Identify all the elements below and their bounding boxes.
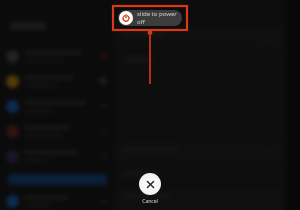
button[interactable]: Power off (118, 10, 182, 26)
button[interactable] (6, 144, 107, 168)
button[interactable] (115, 26, 284, 48)
button[interactable] (6, 44, 107, 68)
button[interactable] (6, 119, 107, 143)
other: Power off (119, 11, 133, 25)
button[interactable] (115, 188, 284, 210)
button[interactable] (6, 94, 107, 118)
button[interactable] (115, 52, 284, 138)
button[interactable] (6, 193, 107, 210)
other: Cancel (139, 173, 161, 195)
button[interactable] (8, 174, 107, 185)
button[interactable] (115, 166, 284, 184)
button[interactable]: Cancel (138, 173, 162, 205)
staticText: Cancel (138, 198, 162, 205)
staticText: slide to power off (137, 10, 182, 26)
button[interactable] (6, 69, 107, 93)
